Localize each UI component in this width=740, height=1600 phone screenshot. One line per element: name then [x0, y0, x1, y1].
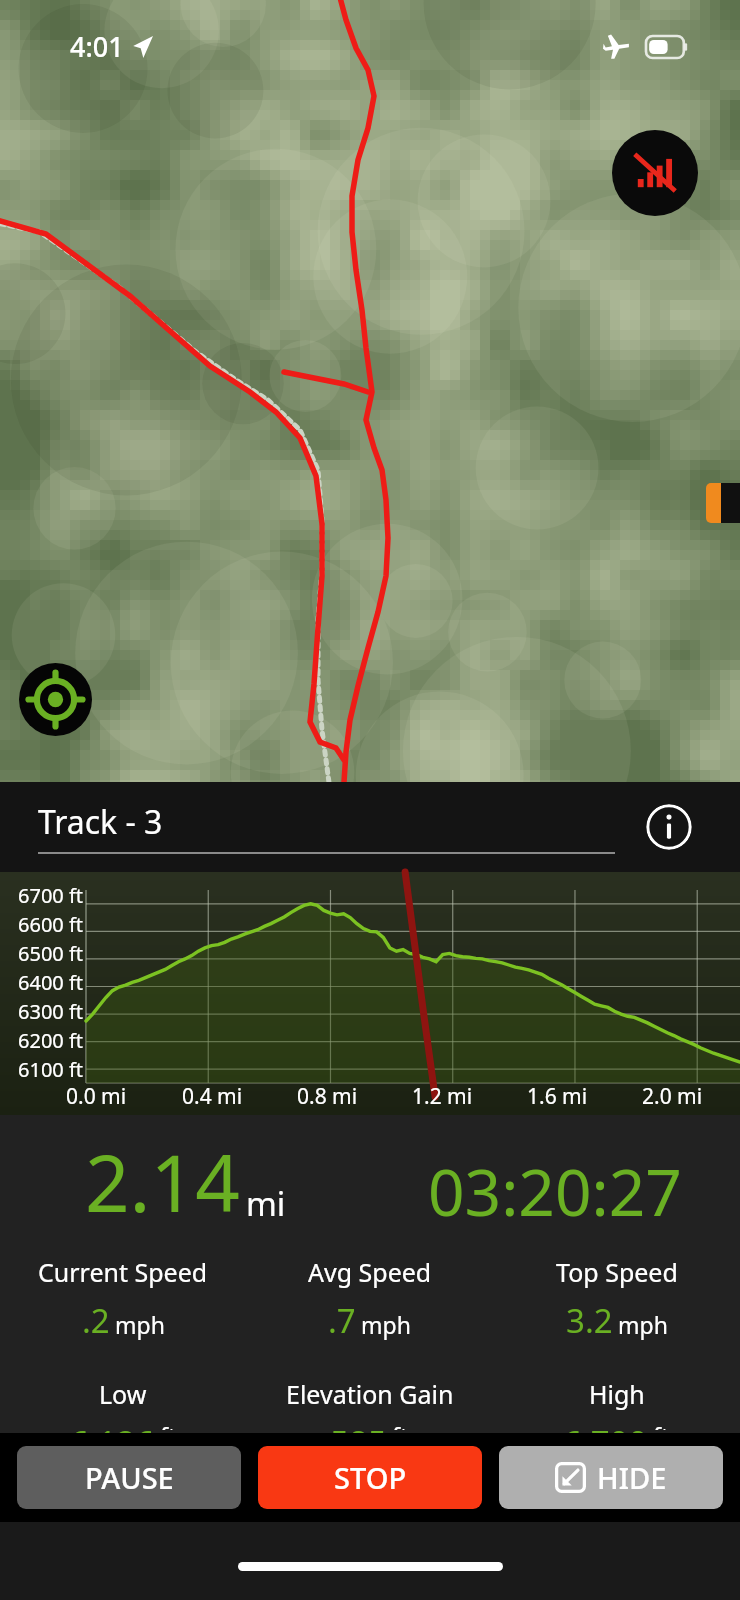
staticText: Low [99, 1377, 147, 1411]
staticText: 6500 ft [18, 940, 84, 967]
staticText: Top Speed [556, 1255, 678, 1289]
staticText: 6600 ft [18, 911, 84, 938]
staticText: ft [160, 1420, 177, 1430]
button[interactable]: HIDE [499, 1446, 723, 1509]
staticText: STOP [334, 1458, 407, 1497]
staticText: 3.2 [566, 1298, 613, 1343]
staticText: 2.0 mi [642, 1082, 703, 1111]
staticText: mph [618, 1309, 668, 1340]
staticText: mph [115, 1309, 165, 1340]
staticText: HIDE [597, 1458, 667, 1497]
staticText: 6400 ft [18, 969, 84, 996]
staticText: 4:01 [70, 28, 124, 65]
staticText: 585 [330, 1420, 387, 1433]
staticText: Current Speed [38, 1255, 208, 1289]
staticText: mph [361, 1309, 411, 1340]
button[interactable]: Track info [646, 804, 692, 850]
staticText: High [589, 1377, 645, 1411]
staticText: 6700 ft [18, 882, 84, 909]
staticText: 2.14 [85, 1129, 240, 1235]
staticText: .7 [328, 1298, 356, 1343]
staticText: PAUSE [85, 1458, 174, 1497]
staticText: Avg Speed [308, 1255, 432, 1289]
staticText: 0.8 mi [297, 1082, 358, 1111]
staticText: 1.2 mi [412, 1082, 473, 1111]
staticText: Track - 3 [38, 800, 163, 844]
staticText: 6300 ft [18, 998, 84, 1025]
staticText: 0.0 mi [66, 1082, 127, 1111]
staticText: 0.4 mi [182, 1082, 243, 1111]
staticText: 6100 ft [18, 1056, 84, 1083]
button[interactable]: STOP [258, 1446, 482, 1509]
staticText: .2 [82, 1298, 110, 1343]
staticText: 03:20:27 [428, 1148, 682, 1235]
staticText: ft [392, 1420, 409, 1430]
staticText: 6200 ft [18, 1027, 84, 1054]
staticText: Elevation Gain [286, 1377, 454, 1411]
button[interactable]: PAUSE [17, 1446, 241, 1509]
staticText: 1.6 mi [527, 1082, 588, 1111]
staticText: 6,126 [70, 1420, 155, 1433]
button[interactable]: No GPS signal [612, 130, 698, 216]
staticText: mi [246, 1181, 286, 1226]
staticText: ft [653, 1420, 670, 1430]
button[interactable]: Track - 3 [38, 800, 615, 854]
button[interactable]: Center on my location [19, 663, 92, 736]
staticText: 6,700 [563, 1420, 648, 1433]
